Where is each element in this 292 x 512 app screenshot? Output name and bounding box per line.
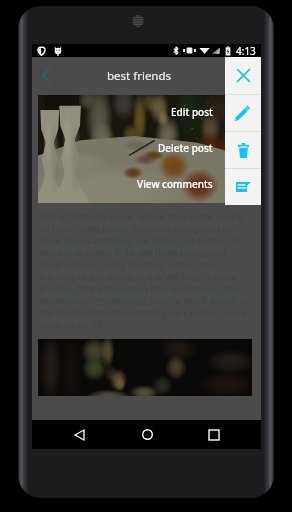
button[interactable]: Recents: [194, 420, 234, 449]
button[interactable]: Delete post: [115, 130, 225, 166]
button[interactable]: [38, 95, 252, 203]
button[interactable]: Home: [127, 420, 167, 449]
button[interactable]: Edit post: [225, 95, 261, 131]
button[interactable]: Back: [32, 57, 60, 94]
button[interactable]: Edit post: [115, 94, 225, 130]
staticText: This is from last week, where they spent…: [39, 210, 252, 331]
staticText: best friends: [107, 68, 172, 84]
button[interactable]: Back: [59, 420, 99, 449]
button[interactable]: View comments: [115, 166, 225, 202]
button[interactable]: Delete post: [225, 132, 261, 168]
staticText: Edit post: [171, 105, 213, 119]
button[interactable]: [38, 339, 252, 396]
staticText: 4:13: [236, 44, 256, 57]
button[interactable]: View comments: [225, 169, 261, 205]
staticText: Delete post: [158, 141, 213, 155]
button[interactable]: Close menu: [225, 57, 261, 94]
staticText: View comments: [137, 177, 213, 191]
